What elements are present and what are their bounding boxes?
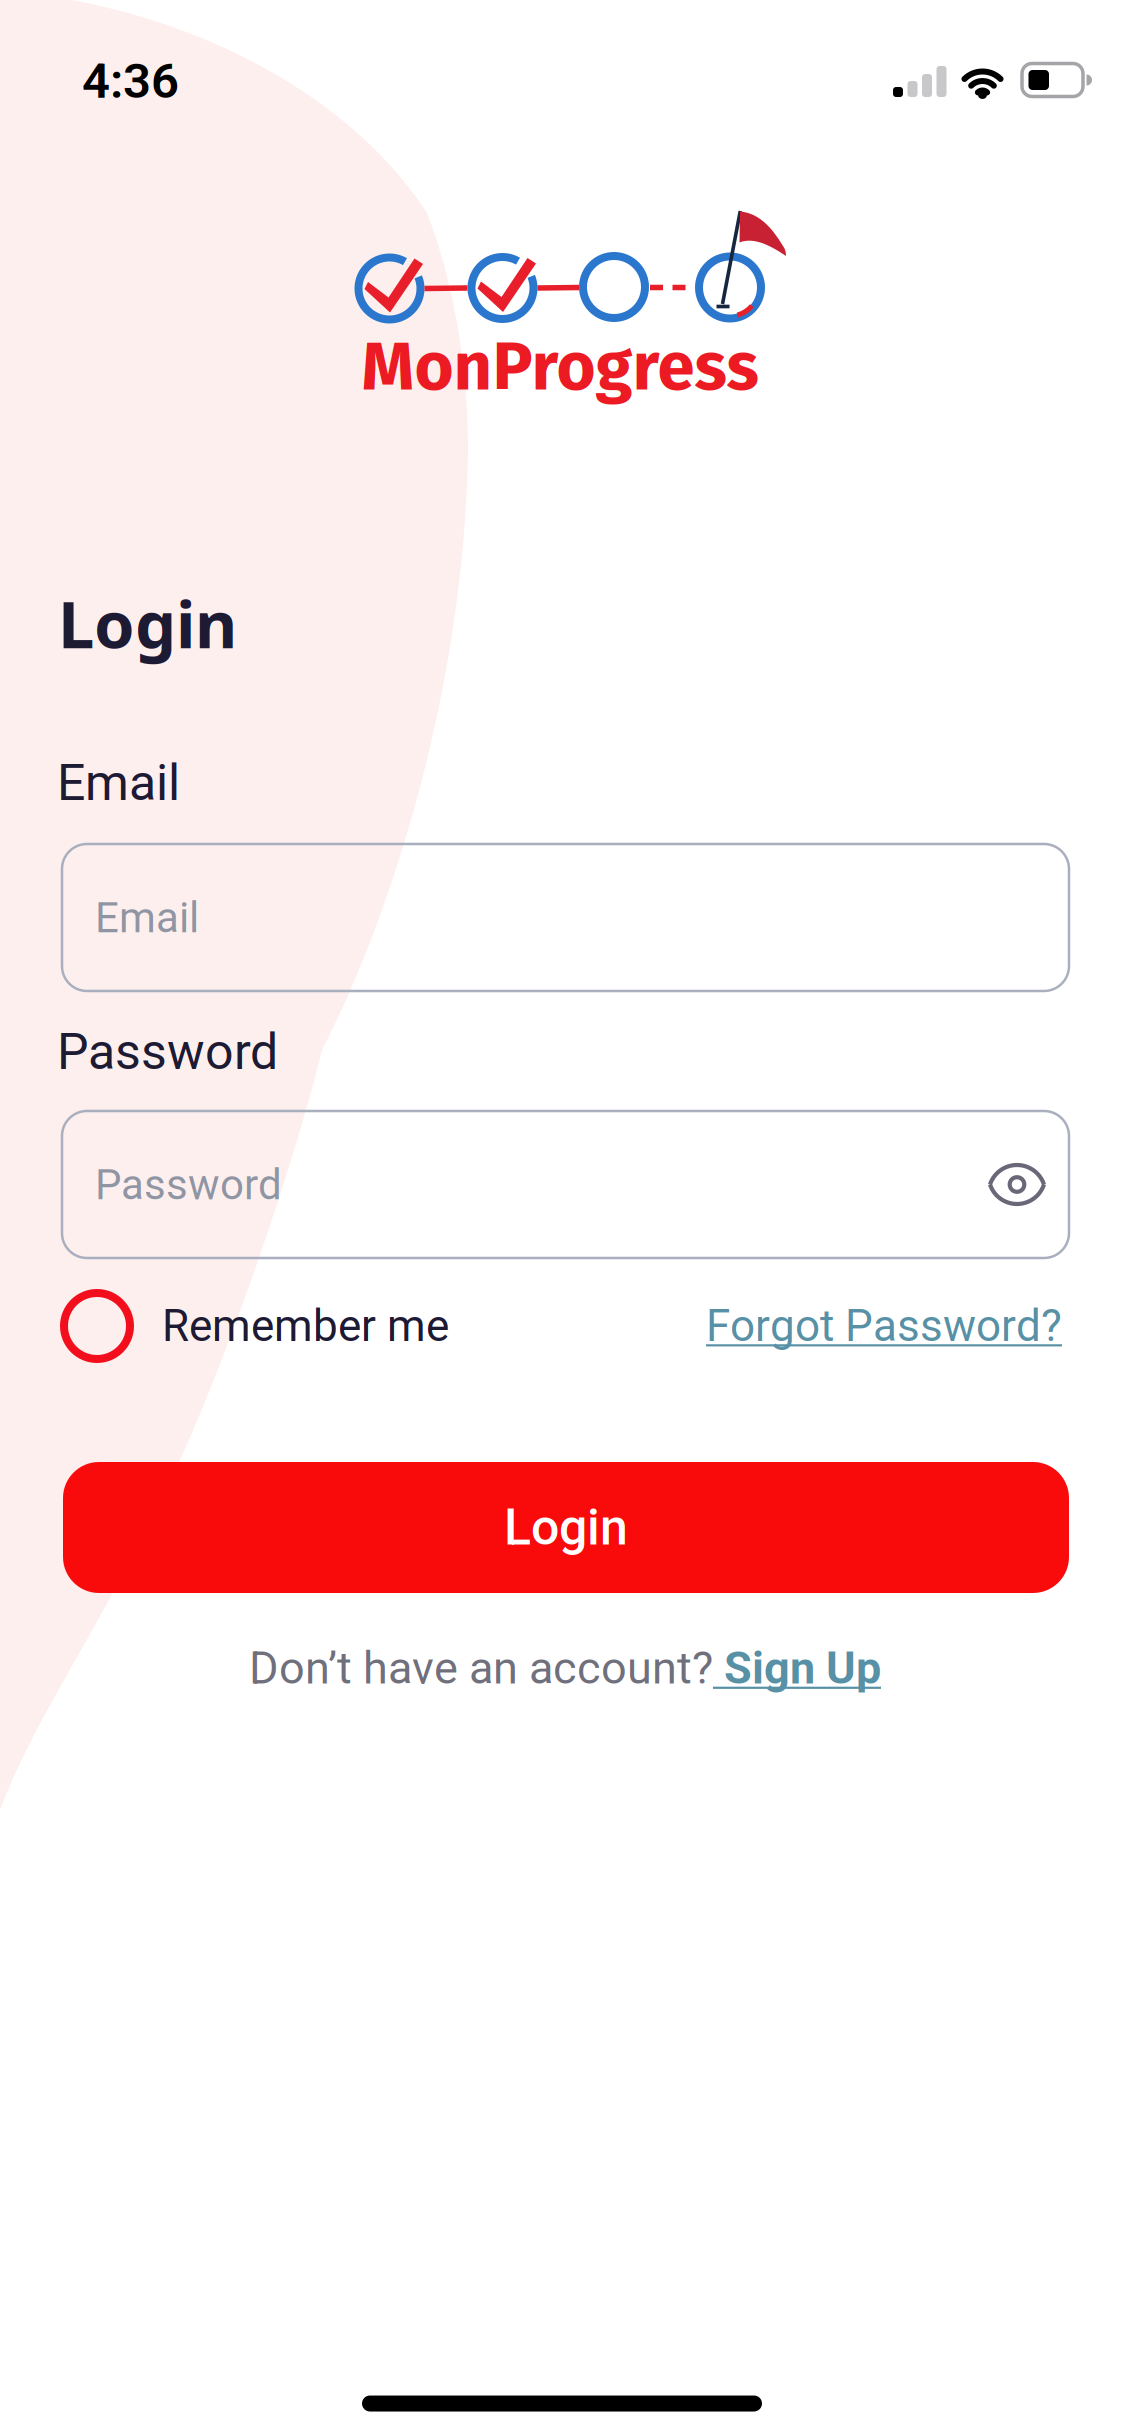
button[interactable]: Remember me	[64, 1293, 449, 1359]
staticText: Sign Up	[713, 1642, 881, 1694]
staticText: Login	[58, 579, 237, 667]
staticText: Password	[95, 1160, 282, 1210]
staticText: Forgot Password?	[706, 1300, 1062, 1352]
button[interactable]: Sign Up	[713, 1642, 881, 1694]
staticText: Login	[504, 1498, 628, 1557]
button[interactable]: Forgot Password?	[706, 1300, 1062, 1352]
staticText: Password	[57, 1023, 278, 1081]
staticText: 4:36	[82, 52, 179, 110]
staticText: MonProgress	[361, 327, 758, 407]
staticText: Email	[95, 893, 199, 943]
staticText: Remember me	[162, 1300, 449, 1352]
button[interactable]: Show password	[987, 1154, 1047, 1214]
staticText: Email	[57, 754, 180, 812]
staticText: Don’t have an account?	[249, 1642, 713, 1694]
button[interactable]: Login	[63, 1462, 1069, 1593]
